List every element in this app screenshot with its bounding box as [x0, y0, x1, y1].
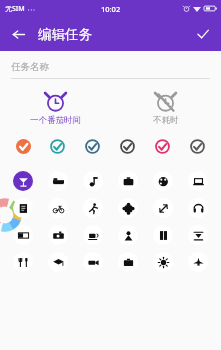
button[interactable]: [40, 135, 75, 157]
button[interactable]: [6, 194, 40, 221]
staticText: 编辑任务: [38, 26, 92, 43]
button[interactable]: [145, 194, 180, 221]
button[interactable]: [110, 167, 145, 194]
button[interactable]: [75, 135, 110, 157]
button[interactable]: [180, 221, 215, 248]
button[interactable]: [40, 167, 75, 194]
staticText: 无SIM: [5, 4, 25, 14]
staticText: 10:02: [101, 4, 121, 14]
button[interactable]: [110, 135, 145, 157]
button[interactable]: [6, 248, 40, 275]
button[interactable]: [180, 194, 215, 221]
button[interactable]: [145, 221, 180, 248]
button[interactable]: [180, 135, 215, 157]
staticText: 不耗时: [153, 115, 179, 126]
button[interactable]: [110, 221, 145, 248]
button[interactable]: [6, 135, 40, 157]
staticText: 任务名称: [11, 61, 49, 73]
button[interactable]: [75, 194, 110, 221]
button[interactable]: 不耗时: [110, 91, 221, 126]
button[interactable]: [75, 221, 110, 248]
button[interactable]: [180, 248, 215, 275]
button[interactable]: [40, 221, 75, 248]
button[interactable]: [40, 194, 75, 221]
button[interactable]: [110, 194, 145, 221]
button[interactable]: [6, 221, 40, 248]
button[interactable]: [145, 167, 180, 194]
button[interactable]: Back: [4, 20, 32, 48]
staticText: 一个番茄时间: [30, 115, 81, 126]
button[interactable]: [40, 248, 75, 275]
button[interactable]: [180, 167, 215, 194]
button[interactable]: 任务名称: [11, 61, 210, 79]
button[interactable]: [145, 248, 180, 275]
button[interactable]: [110, 248, 145, 275]
button[interactable]: Save: [189, 20, 217, 48]
button[interactable]: [75, 248, 110, 275]
button[interactable]: [145, 135, 180, 157]
button[interactable]: [6, 167, 40, 194]
button[interactable]: 一个番茄时间: [0, 91, 110, 126]
button[interactable]: [75, 167, 110, 194]
